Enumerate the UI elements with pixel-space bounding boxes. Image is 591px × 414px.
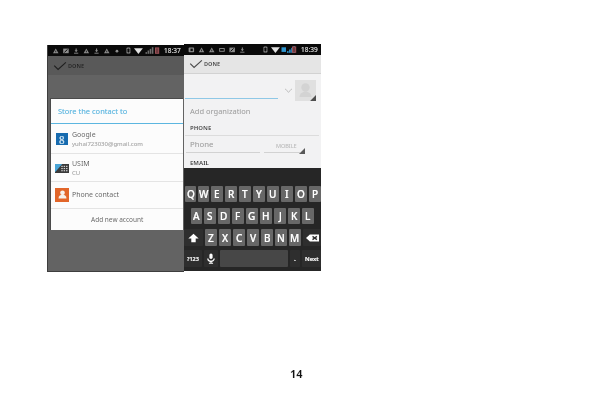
button[interactable]: USIM — [51, 154, 183, 181]
button[interactable]: G — [246, 208, 258, 224]
staticText: Z — [208, 231, 214, 245]
button[interactable]: Phone contact — [51, 182, 183, 208]
staticText: 18:37 — [164, 46, 181, 55]
staticText: L — [305, 209, 311, 223]
staticText: Next — [305, 255, 319, 263]
staticText: Phone contact — [72, 190, 120, 200]
staticText: T — [242, 187, 248, 201]
button[interactable]: X — [219, 229, 231, 246]
button[interactable]: Y — [253, 186, 265, 202]
staticText: 8 — [59, 133, 65, 145]
staticText: Y — [256, 187, 262, 201]
staticText: M — [290, 231, 300, 245]
staticText: G — [248, 209, 256, 223]
staticText: H — [262, 209, 270, 223]
staticText: ?123 — [187, 255, 199, 262]
staticText: I — [285, 187, 289, 201]
staticText: O — [297, 187, 305, 201]
button[interactable]: Z — [205, 229, 217, 246]
button[interactable]: E — [211, 186, 223, 202]
staticText: K — [291, 209, 298, 223]
staticText: EMAIL — [190, 159, 209, 167]
staticText: 18:39 — [301, 45, 318, 54]
other: Expand name — [285, 88, 292, 93]
staticText: P — [312, 187, 319, 201]
button[interactable]: T — [239, 186, 251, 202]
button[interactable]: K — [288, 208, 300, 224]
button[interactable]: Next — [302, 250, 321, 267]
staticText: Phone — [190, 139, 214, 150]
button[interactable]: W — [198, 186, 209, 202]
button[interactable]: ?123 — [184, 250, 202, 267]
button[interactable]: . — [290, 250, 300, 267]
button[interactable]: L — [302, 208, 314, 224]
staticText: J — [279, 209, 282, 223]
button[interactable]: D — [218, 208, 230, 224]
staticText: R — [228, 187, 235, 201]
button[interactable]: A — [191, 208, 202, 224]
button[interactable]: I — [281, 186, 293, 202]
button[interactable]: M — [289, 229, 301, 246]
button[interactable]: DONE — [184, 55, 221, 73]
staticText: S — [207, 209, 213, 223]
button[interactable]: Voice input — [204, 250, 218, 267]
staticText: W — [199, 187, 209, 201]
staticText: yuhai723030@gmail.com — [72, 140, 143, 148]
button[interactable]: Shift — [184, 229, 203, 246]
staticText: Google — [72, 130, 96, 140]
staticText: V — [250, 231, 257, 245]
staticText: B — [264, 231, 271, 245]
button[interactable]: H — [260, 208, 272, 224]
staticText: Add organization — [190, 106, 251, 116]
staticText: . — [294, 254, 296, 264]
staticText: Add new account — [91, 215, 144, 224]
staticText: X — [222, 231, 229, 245]
staticText: E — [214, 187, 220, 201]
staticText: Q — [187, 187, 195, 201]
button[interactable]: Add new account — [51, 209, 183, 230]
button[interactable]: Contact photo — [295, 80, 316, 101]
staticText: CU — [72, 169, 81, 177]
button[interactable]: U — [267, 186, 279, 202]
staticText: MOBILE — [276, 142, 297, 149]
staticText: F — [235, 209, 241, 223]
button[interactable]: V — [247, 229, 259, 246]
button[interactable]: N — [275, 229, 287, 246]
staticText: N — [277, 231, 285, 245]
staticText: PHONE — [190, 124, 212, 132]
button[interactable]: DONE — [48, 56, 85, 75]
button[interactable]: J — [274, 208, 286, 224]
staticText: 14 — [290, 366, 303, 381]
button[interactable]: Q — [185, 186, 196, 202]
staticText: A — [193, 209, 200, 223]
button[interactable]: S — [204, 208, 216, 224]
button[interactable]: R — [225, 186, 237, 202]
staticText: DONE — [204, 60, 221, 68]
button[interactable]: 8 — [51, 124, 183, 153]
staticText: D — [220, 209, 228, 223]
staticText: Store the contact to — [58, 106, 128, 116]
button[interactable]: O — [295, 186, 307, 202]
staticText: C — [236, 231, 243, 245]
button[interactable]: F — [232, 208, 244, 224]
button[interactable]: B — [261, 229, 273, 246]
staticText: DONE — [68, 62, 85, 70]
button[interactable]: Delete — [303, 229, 321, 246]
button[interactable]: P — [309, 186, 321, 202]
staticText: USIM — [72, 159, 90, 169]
staticText: U — [269, 187, 277, 201]
button[interactable]: C — [233, 229, 245, 246]
